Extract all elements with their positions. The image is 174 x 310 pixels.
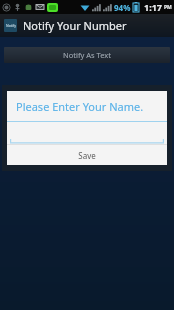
- button[interactable]: Notify As Text: [4, 47, 170, 63]
- button[interactable]: [10, 122, 164, 144]
- staticText: 94%: [114, 2, 131, 13]
- button[interactable]: Save: [7, 145, 167, 165]
- staticText: PM: [164, 4, 172, 11]
- staticText: Notify Your Number: [23, 18, 127, 33]
- staticText: Save: [78, 150, 96, 161]
- staticText: Notify: [6, 23, 16, 28]
- staticText: 1:17: [144, 1, 162, 13]
- staticText: Please Enter Your Name.: [16, 99, 144, 114]
- staticText: Notify As Text: [63, 50, 111, 60]
